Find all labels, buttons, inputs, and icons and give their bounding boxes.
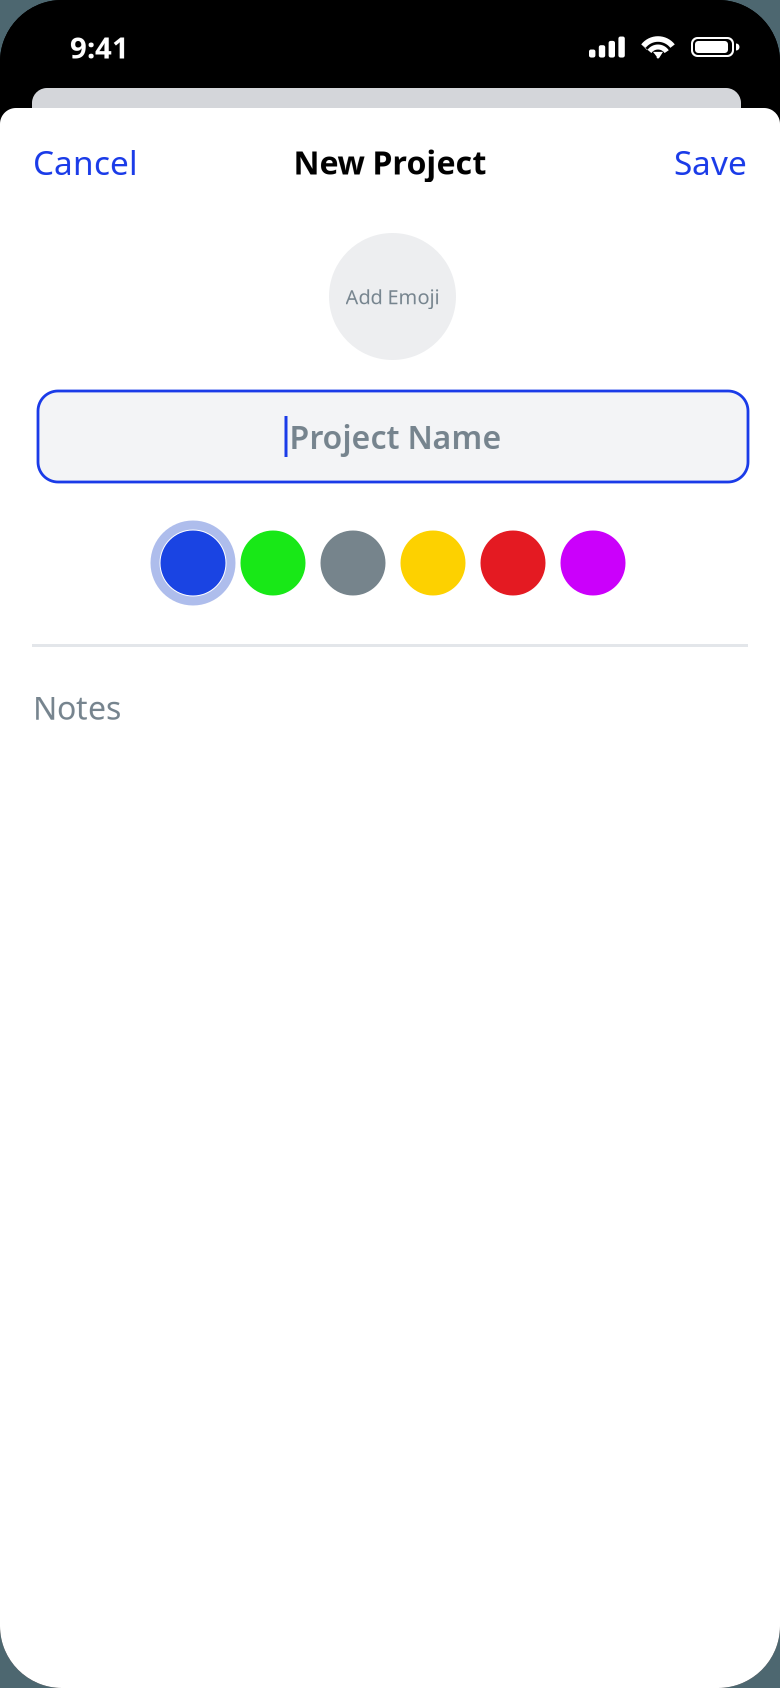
- staticText: Add Emoji: [345, 283, 439, 310]
- button[interactable]: Project colour: [153, 520, 233, 606]
- button[interactable]: Project colour: [233, 520, 313, 606]
- button[interactable]: Save: [674, 128, 747, 196]
- button[interactable]: Project colour: [393, 520, 473, 606]
- button[interactable]: Project colour: [473, 520, 553, 606]
- button[interactable]: Project colour: [553, 520, 633, 606]
- staticText: Project Name: [289, 415, 501, 458]
- staticText: 9:41: [70, 27, 129, 66]
- staticText: New Project: [293, 141, 486, 183]
- button[interactable]: Project colour: [313, 520, 393, 606]
- button[interactable]: Cancel: [33, 128, 138, 196]
- staticText: Notes: [33, 686, 121, 728]
- staticText: Cancel: [33, 140, 138, 184]
- staticText: Save: [674, 140, 747, 184]
- button[interactable]: Add Emoji: [329, 233, 456, 360]
